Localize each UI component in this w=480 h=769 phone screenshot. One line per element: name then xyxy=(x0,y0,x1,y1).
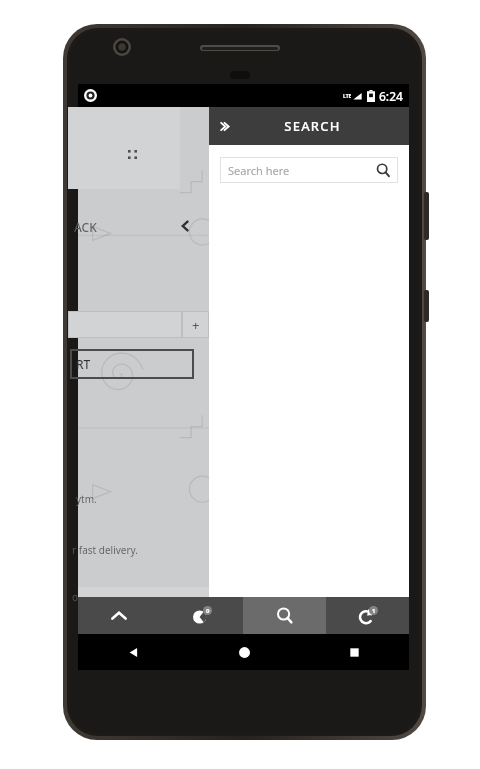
staticText: 6:24 xyxy=(379,88,403,104)
staticText: + xyxy=(192,316,200,334)
button[interactable]: Back xyxy=(78,634,189,670)
staticText: LTE xyxy=(343,93,352,100)
staticText: 1 xyxy=(372,607,376,615)
button[interactable]: Search here xyxy=(220,157,398,183)
button[interactable]: Home xyxy=(189,634,299,670)
staticText: ACK xyxy=(74,219,97,235)
staticText: SEARCH xyxy=(284,117,341,135)
staticText: RT xyxy=(76,356,91,372)
button[interactable]: Cart 0 items xyxy=(160,597,243,634)
button[interactable]: Expand panel xyxy=(209,111,239,141)
staticText: 0 xyxy=(206,607,210,615)
button[interactable]: Up xyxy=(78,597,160,634)
staticText: r fast delivery. xyxy=(72,543,138,557)
other: Search xyxy=(376,163,390,177)
staticText: Search here xyxy=(228,163,376,178)
staticText: ytm. xyxy=(76,492,97,506)
button[interactable]: Recent apps xyxy=(299,634,409,670)
button[interactable]: History 1 item xyxy=(326,597,409,634)
button[interactable]: Search xyxy=(243,597,326,634)
staticText: ood prices. xyxy=(72,590,124,604)
